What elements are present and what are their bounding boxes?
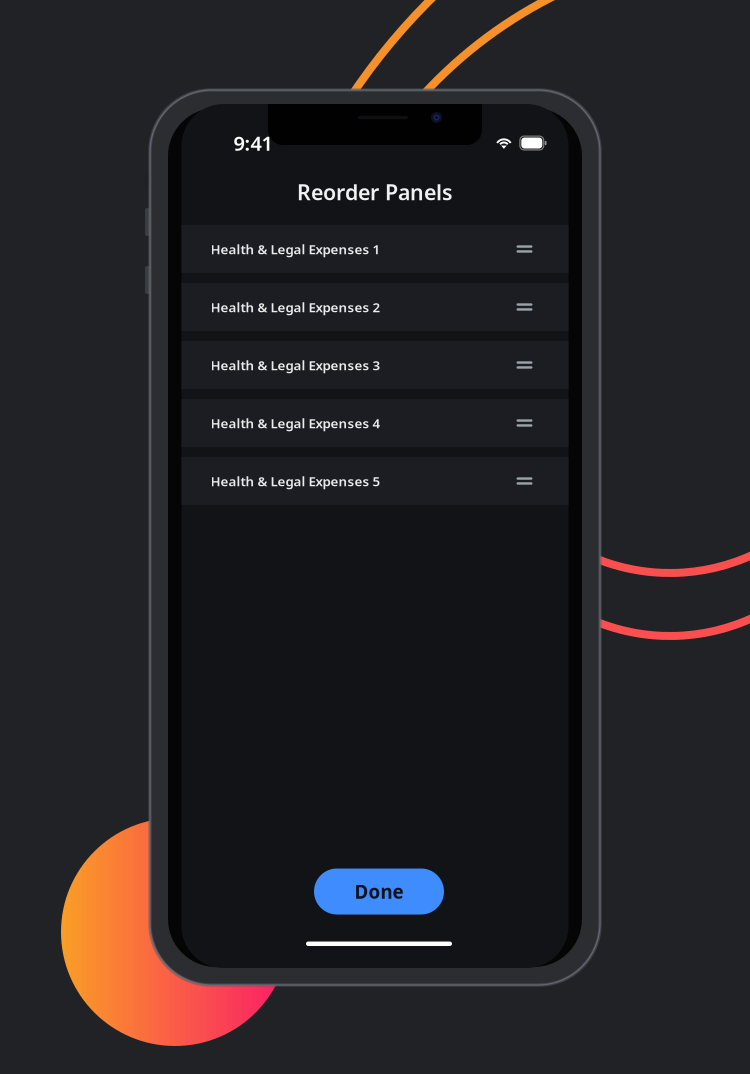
staticText: Health & Legal Expenses 3: [210, 356, 380, 374]
staticText: Health & Legal Expenses 5: [210, 472, 380, 490]
button[interactable]: Done: [314, 868, 444, 914]
staticText: Reorder Panels: [297, 178, 453, 206]
staticText: Health & Legal Expenses 2: [210, 298, 380, 316]
staticText: 9:41: [233, 130, 272, 156]
staticText: Health & Legal Expenses 1: [210, 240, 380, 258]
button[interactable]: Health & Legal Expenses 2: [181, 283, 568, 331]
button[interactable]: Health & Legal Expenses 5: [181, 457, 568, 505]
button[interactable]: Health & Legal Expenses 4: [181, 399, 568, 447]
button[interactable]: Health & Legal Expenses 1: [181, 225, 568, 273]
staticText: Health & Legal Expenses 4: [210, 414, 380, 432]
staticText: Done: [354, 879, 403, 904]
button[interactable]: Health & Legal Expenses 3: [181, 341, 568, 389]
